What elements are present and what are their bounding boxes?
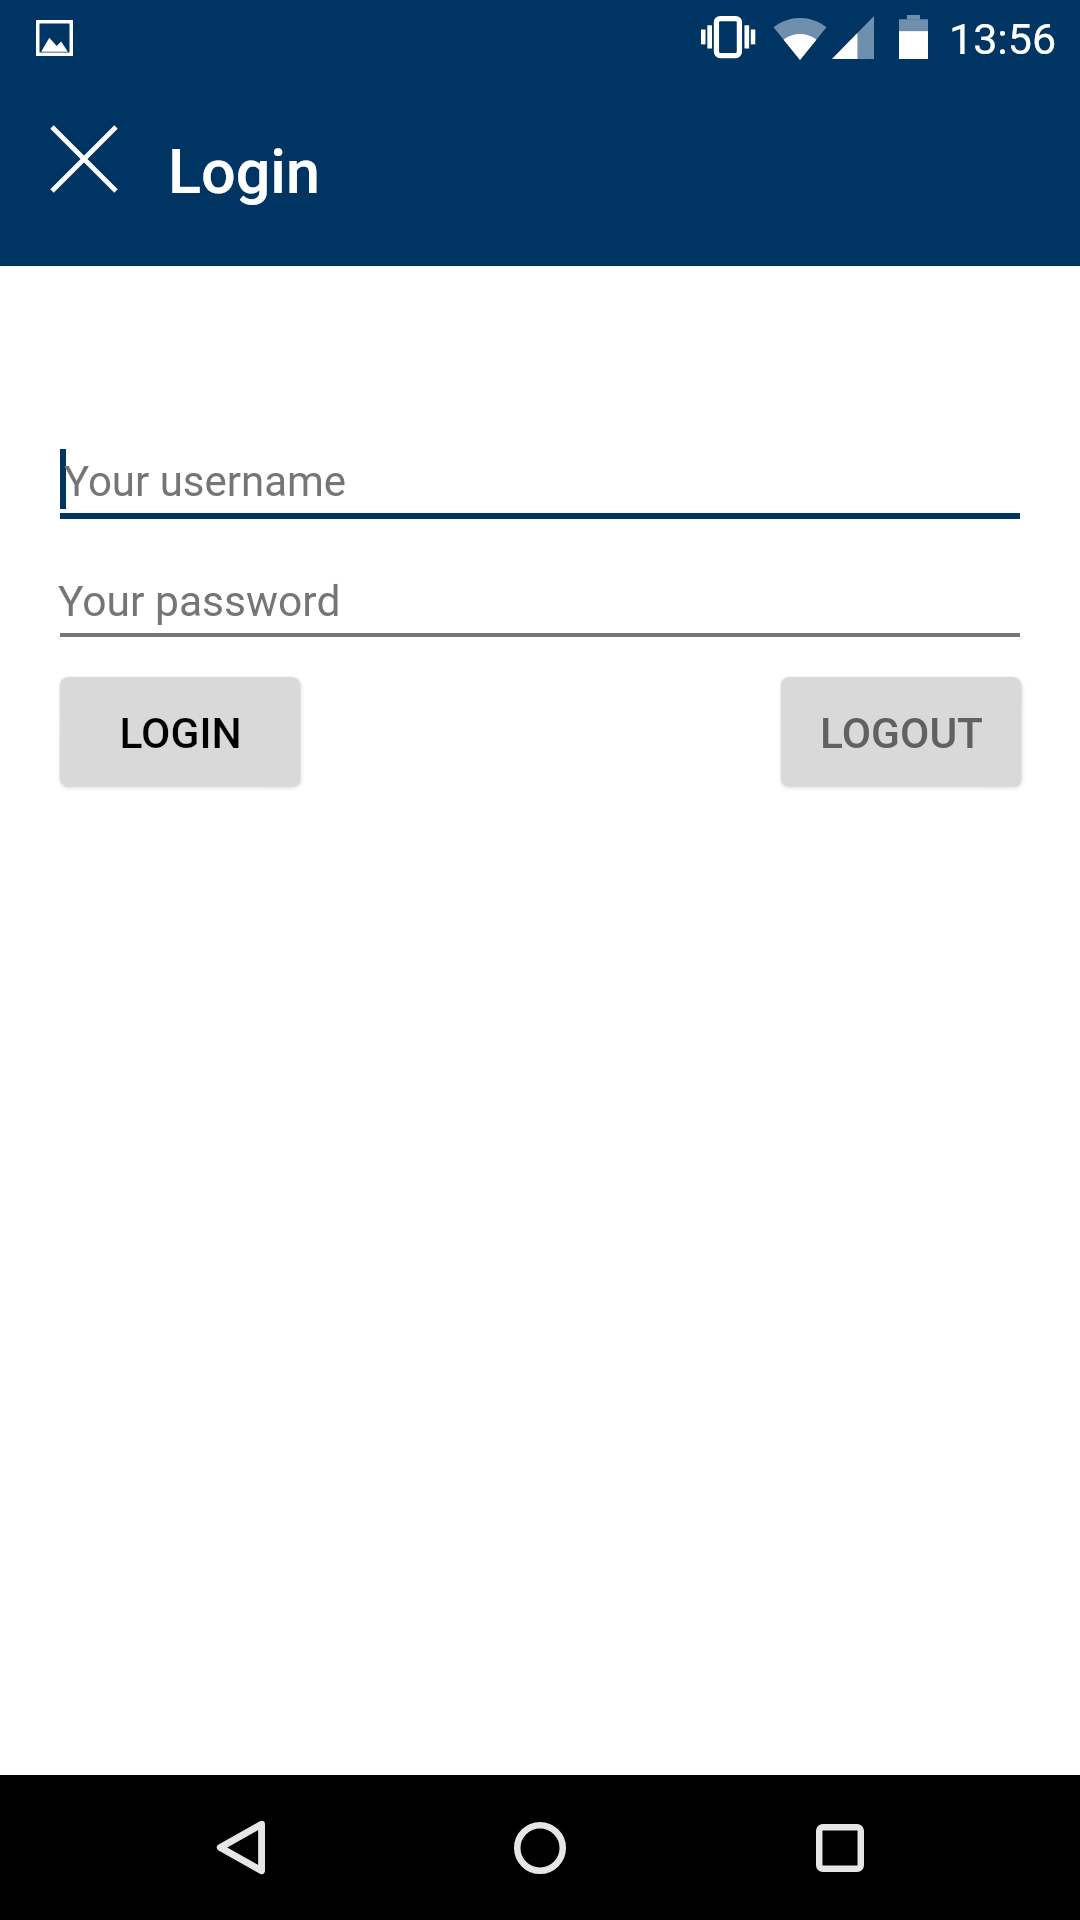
button[interactable]: Your password [60, 552, 1020, 637]
button[interactable]: LOGIN [60, 677, 300, 786]
staticText: 13:56 [949, 14, 1057, 64]
button[interactable]: Your username [60, 430, 1020, 519]
button[interactable]: Close [36, 111, 132, 207]
button[interactable]: Back [168, 1775, 312, 1920]
button[interactable]: Recent apps [768, 1775, 912, 1920]
staticText: LOGOUT [820, 709, 983, 759]
button[interactable]: LOGOUT [781, 677, 1021, 786]
button[interactable]: Home [468, 1775, 612, 1920]
staticText: Login [168, 136, 320, 207]
staticText: LOGIN [119, 709, 242, 759]
staticText: Your username [64, 457, 347, 506]
staticText: Your password [58, 576, 341, 626]
